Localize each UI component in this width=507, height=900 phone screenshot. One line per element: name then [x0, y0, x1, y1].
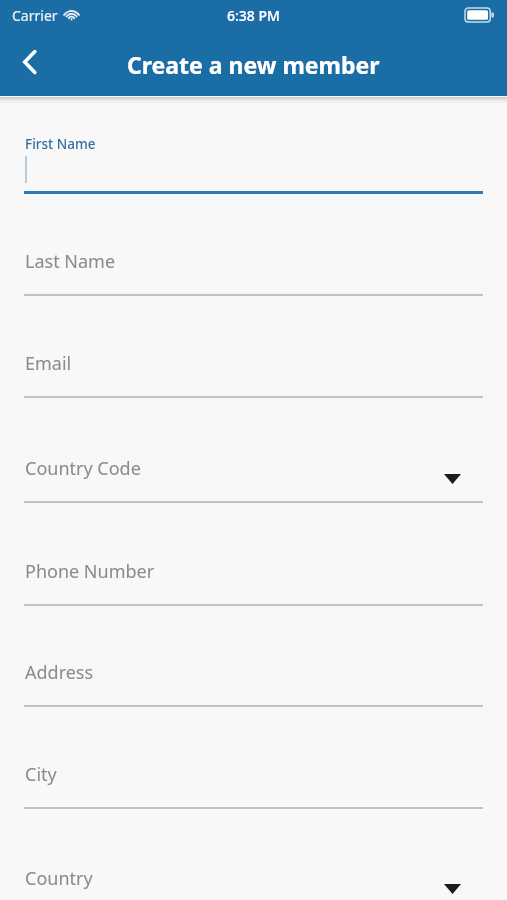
staticText: Address	[25, 660, 94, 685]
button[interactable]: Back	[8, 40, 52, 84]
staticText: Phone Number	[25, 559, 155, 584]
button[interactable]: Last Name	[0, 241, 507, 337]
staticText: Create a new member	[127, 49, 380, 80]
staticText: Country	[25, 866, 93, 891]
staticText: Country Code	[25, 456, 141, 481]
button[interactable]: City	[0, 754, 507, 850]
staticText: Carrier	[12, 6, 58, 25]
staticText: City	[25, 762, 57, 787]
staticText: Last Name	[25, 249, 116, 274]
button[interactable]: Country Code	[0, 448, 507, 544]
staticText: Email	[25, 351, 72, 376]
button[interactable]: First Name	[0, 133, 507, 225]
button[interactable]: Country	[0, 858, 507, 900]
button[interactable]: Address	[0, 652, 507, 748]
button[interactable]: Email	[0, 343, 507, 439]
staticText: 6:38 PM	[227, 6, 280, 25]
staticText: First Name	[25, 135, 96, 153]
button[interactable]: Phone Number	[0, 551, 507, 647]
